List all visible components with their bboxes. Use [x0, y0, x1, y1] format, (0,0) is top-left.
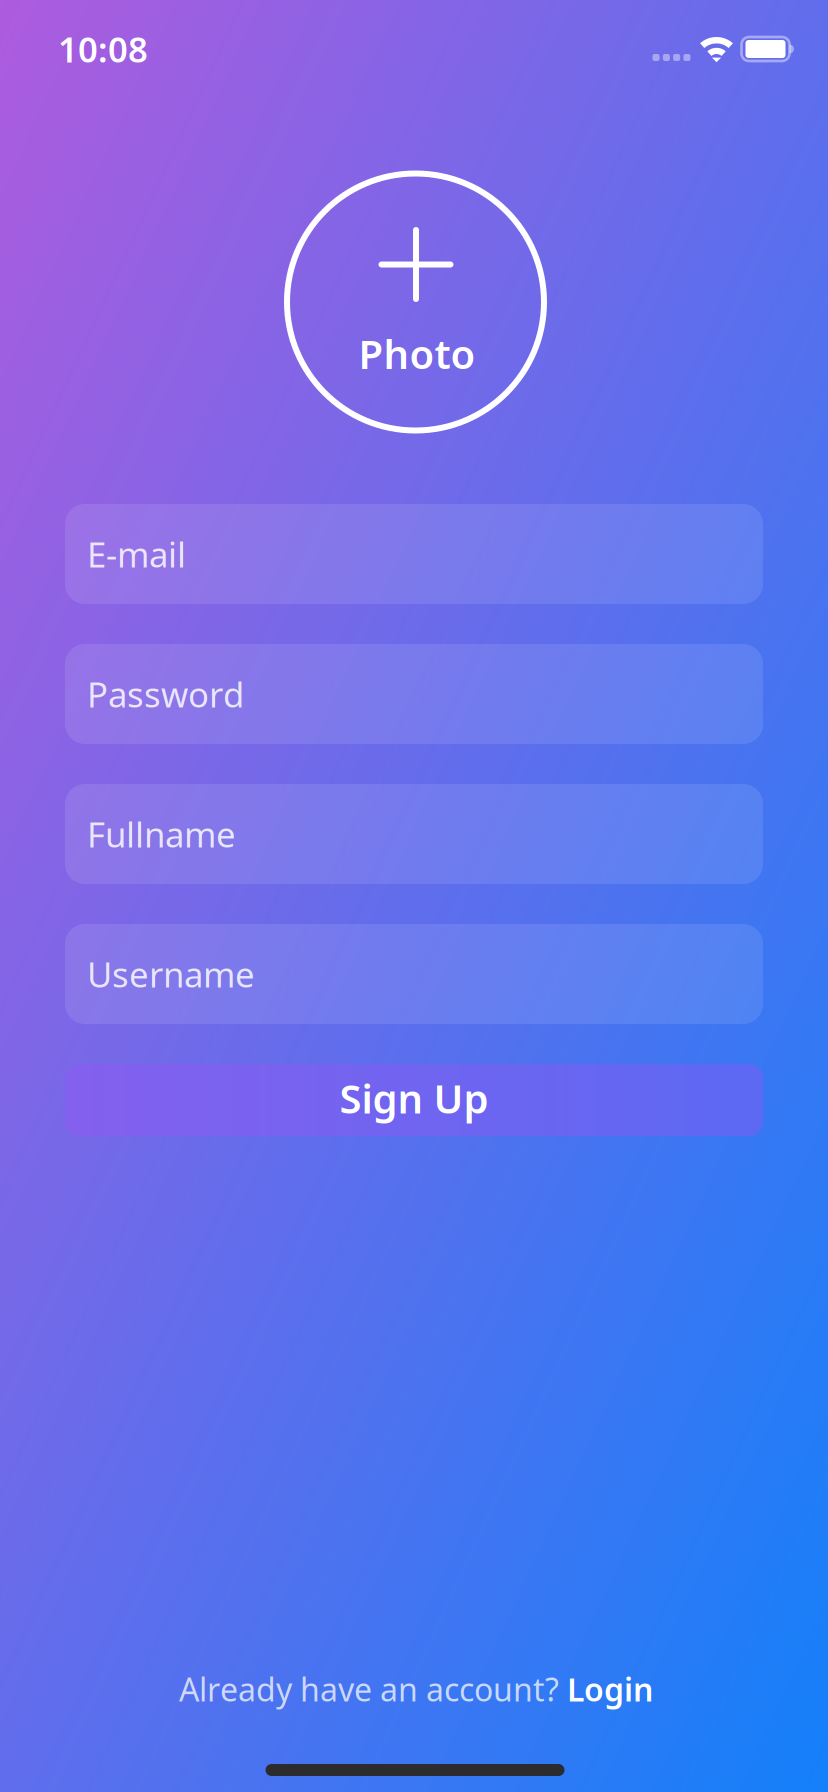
staticText: Photo: [358, 327, 475, 380]
staticText: Already have an account?: [179, 1668, 567, 1710]
button[interactable]: Fullname: [65, 784, 763, 884]
staticText: Fullname: [87, 811, 236, 857]
staticText: Username: [87, 951, 255, 997]
button[interactable]: Add photo: [284, 170, 547, 433]
button[interactable]: Username: [65, 924, 763, 1024]
staticText: E-mail: [87, 531, 186, 577]
staticText: 10:08: [58, 26, 148, 72]
staticText: Password: [87, 671, 244, 717]
staticText: Sign Up: [339, 1071, 488, 1124]
button[interactable]: Already have an account?: [157, 1652, 675, 1726]
button[interactable]: Password: [65, 644, 763, 744]
staticText: Login: [567, 1668, 653, 1710]
button[interactable]: Sign Up: [65, 1064, 763, 1136]
button[interactable]: E-mail: [65, 504, 763, 604]
